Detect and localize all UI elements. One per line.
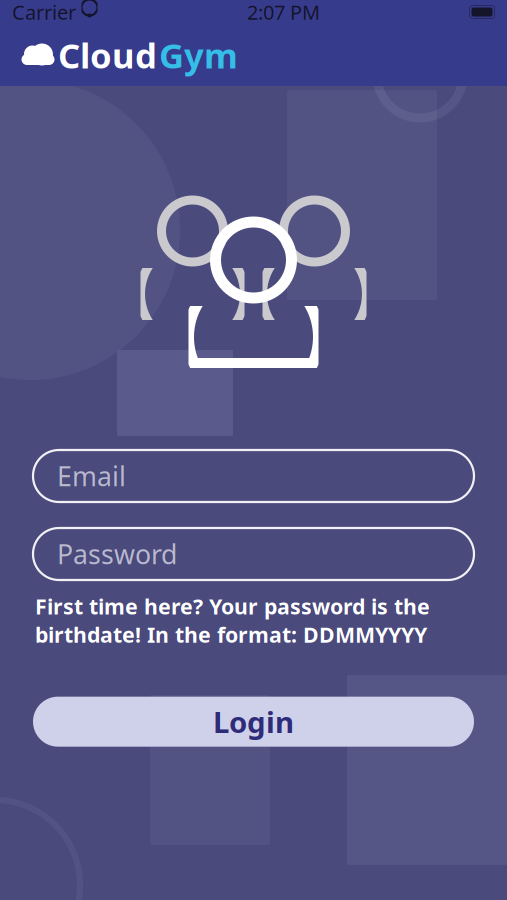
button[interactable]: Cloud Gym home [20,32,238,78]
button[interactable]: Email [33,450,474,502]
staticText: Cloud [58,32,157,78]
staticText: Gym [159,32,238,78]
staticText: Email [57,458,126,494]
staticText: Carrier [12,0,76,25]
staticText: Login [213,702,294,741]
button[interactable]: Password [33,528,474,580]
staticText: Password [57,536,177,572]
button[interactable]: Login [33,697,474,747]
staticText: 2:07 PM [247,0,320,25]
staticText: First time here? Your password is the bi… [35,592,430,649]
